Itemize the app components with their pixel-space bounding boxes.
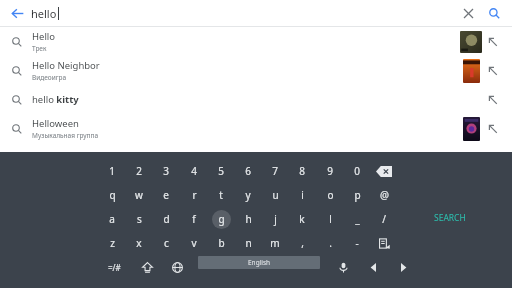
button[interactable]: Insert suggestion [484,62,502,80]
button[interactable]: Move cursor right [392,256,414,278]
button[interactable]: Change language [166,256,188,278]
staticText: , [301,236,304,250]
staticText: m [270,236,280,250]
staticText: Трек [32,44,47,53]
button[interactable]: Voice input [332,256,354,278]
button[interactable]: b [210,232,232,254]
button[interactable]: c [155,232,177,254]
staticText: English [248,258,271,267]
button[interactable]: Hello [0,27,512,56]
button[interactable]: p [346,184,368,206]
staticText: e [163,188,169,202]
staticText: 8 [299,164,305,178]
staticText: Hello [32,30,56,43]
button[interactable]: e [155,184,177,206]
button[interactable]: =/# [101,256,127,278]
button[interactable]: hello [31,6,59,21]
button[interactable]: x [128,232,150,254]
button[interactable]: English [198,256,320,269]
staticText: . [329,236,332,250]
staticText: d [163,212,170,226]
staticText: - [355,236,359,250]
button[interactable]: 1 [101,160,123,182]
staticText: g [218,212,225,226]
staticText: x [136,236,142,250]
staticText: q [109,188,116,202]
staticText: n [245,236,252,250]
button[interactable]: Insert suggestion [484,120,502,138]
button[interactable]: , [291,232,313,254]
button[interactable]: f [183,208,205,230]
button[interactable]: t [210,184,232,206]
button[interactable]: s [128,208,150,230]
button[interactable]: z [101,232,123,254]
staticText: hello kitty [32,93,79,106]
button[interactable]: l [319,208,341,230]
staticText: 9 [327,164,333,178]
button[interactable]: 9 [319,160,341,182]
staticText: _ [355,212,360,226]
staticText: k [299,212,305,226]
staticText: l [329,212,332,226]
button[interactable]: _ [346,208,368,230]
button[interactable]: Enter [373,232,395,254]
staticText: 7 [272,164,278,178]
staticText: u [272,188,279,202]
staticText: Hello Neighbor [32,59,100,72]
button[interactable]: h [237,208,259,230]
button[interactable]: 7 [264,160,286,182]
button[interactable]: j [264,208,286,230]
button[interactable]: Move cursor left [362,256,384,278]
button[interactable]: Backspace [372,160,396,182]
button[interactable]: 3 [155,160,177,182]
button[interactable]: . [319,232,341,254]
button[interactable]: u [264,184,286,206]
button[interactable]: @ [373,184,395,206]
staticText: b [218,236,225,250]
button[interactable]: 4 [183,160,205,182]
staticText: o [327,188,334,202]
staticText: y [245,188,251,202]
button[interactable]: y [237,184,259,206]
button[interactable]: a [101,208,123,230]
staticText: z [110,236,115,250]
button[interactable]: - [346,232,368,254]
button[interactable]: Hello Neighbor [0,56,512,85]
button[interactable]: 6 [237,160,259,182]
staticText: j [274,212,277,226]
button[interactable]: Helloween [0,114,512,143]
button[interactable]: 8 [291,160,313,182]
staticText: @ [380,188,389,202]
button[interactable]: q [101,184,123,206]
button[interactable]: Back [6,2,28,24]
button[interactable]: Insert suggestion [484,91,502,109]
staticText: a [109,212,115,226]
button[interactable]: w [128,184,150,206]
button[interactable]: Insert suggestion [484,33,502,51]
staticText: Видеоигра [32,73,67,82]
button[interactable]: Search [484,3,504,23]
staticText: c [164,236,169,250]
staticText: / [382,212,386,226]
button[interactable]: / [373,208,395,230]
button[interactable]: m [264,232,286,254]
button[interactable]: 5 [210,160,232,182]
button[interactable]: n [237,232,259,254]
button[interactable]: Clear [458,3,478,23]
button[interactable]: 0 [346,160,368,182]
staticText: Музыкальная группа [32,131,99,140]
button[interactable]: Shift [136,256,158,278]
staticText: p [354,188,361,202]
staticText: 1 [109,164,115,178]
button[interactable]: g [210,208,232,230]
button[interactable]: o [319,184,341,206]
staticText: 5 [218,164,224,178]
button[interactable]: d [155,208,177,230]
button[interactable]: v [183,232,205,254]
button[interactable]: hello kitty [0,85,512,114]
button[interactable]: k [291,208,313,230]
button[interactable]: 2 [128,160,150,182]
button[interactable]: SEARCH [434,208,494,228]
button[interactable]: r [183,184,205,206]
button[interactable]: i [291,184,313,206]
